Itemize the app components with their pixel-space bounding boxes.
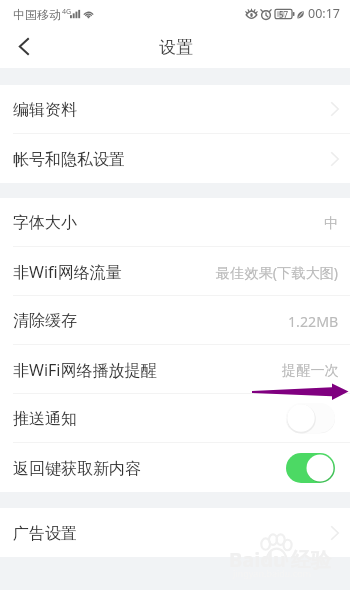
staticText: 4G [62,7,72,17]
staticText: 帐号和隐私设置 [13,150,125,170]
staticText: 中 [324,214,339,232]
staticText: 推送通知 [13,409,77,429]
button[interactable]: 推送通知 [0,394,350,443]
staticText: 最佳效果(下载大图) [216,263,339,282]
staticText: 00:17 [308,5,340,21]
button[interactable]: 广告设置 [0,508,350,557]
staticText: 中国移动 [13,7,61,22]
staticText: 字体大小 [13,213,77,233]
button[interactable]: 字体大小 [0,198,350,247]
staticText: Baidu 经验 [229,546,332,573]
button[interactable]: Back [0,28,44,68]
staticText: 57 [279,9,289,20]
button[interactable]: 推送通知 [286,403,335,433]
staticText: 设置 [159,37,193,58]
staticText: 返回键获取新内容 [13,459,141,479]
staticText: 非Wifi网络流量 [13,261,122,283]
button[interactable]: 返回键获取新内容 [286,453,335,483]
staticText: 清除缓存 [13,311,77,331]
staticText: 非WiFi网络播放提醒 [13,359,157,381]
button[interactable]: 清除缓存 [0,296,350,345]
staticText: 提醒一次 [282,361,339,379]
staticText: 广告设置 [13,524,77,544]
staticText: 1.22MB [288,312,339,331]
button[interactable]: 返回键获取新内容 [0,443,350,492]
staticText: 编辑资料 [13,100,77,120]
button[interactable]: 非WiFi网络播放提醒 [0,345,350,394]
button[interactable]: 编辑资料 [0,85,350,134]
button[interactable]: 帐号和隐私设置 [0,134,350,183]
button[interactable]: 非Wifi网络流量 [0,247,350,296]
